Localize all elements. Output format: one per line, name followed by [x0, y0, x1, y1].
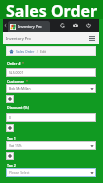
button[interactable]: Inventory Pro [8, 21, 50, 32]
button[interactable]: Add [6, 152, 14, 160]
staticText: Discount (%) [7, 105, 29, 110]
staticText: * [21, 61, 24, 66]
staticText: / [35, 49, 40, 54]
button[interactable]: Add [6, 95, 14, 103]
staticText: Bob McMillan [9, 86, 31, 91]
staticText: Please Select [9, 170, 30, 175]
button[interactable]: 0 [6, 113, 96, 122]
staticText: Order # [7, 61, 21, 66]
staticText: Customer [7, 79, 25, 84]
staticText: Tax 1 [7, 136, 16, 141]
button[interactable]: Add [6, 124, 14, 132]
staticText: Inventory Pro [6, 36, 31, 41]
button[interactable]: Camera [71, 19, 79, 32]
staticText: Sales Order [16, 49, 35, 54]
staticText: 0 [9, 115, 11, 120]
button[interactable]: Menu [86, 32, 97, 44]
button[interactable]: Power [84, 19, 92, 32]
button[interactable]: Back [3, 19, 8, 32]
staticText: Sales Order [6, 0, 98, 19]
staticText: Edit [40, 49, 47, 54]
staticText: SLS-0001 [9, 70, 24, 75]
button[interactable]: SLS-0001 [6, 68, 96, 77]
button[interactable]: Sales Order [6, 46, 96, 56]
staticText: Tax 2 [7, 163, 16, 168]
button[interactable]: Vat 15% [6, 141, 96, 150]
staticText: Vat 15% [9, 143, 22, 148]
button[interactable]: Refresh [58, 19, 66, 32]
button[interactable]: Please Select [6, 168, 96, 177]
button[interactable]: Bob McMillan [6, 84, 96, 93]
staticText: Inventory Pro [18, 24, 42, 29]
staticText: * [25, 79, 28, 84]
